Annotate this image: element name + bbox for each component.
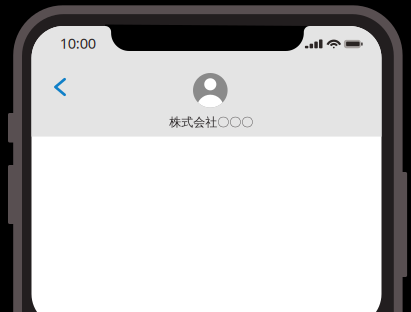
staticText: 10:00 — [60, 33, 96, 53]
button[interactable]: Back — [40, 65, 80, 109]
staticText: 株式会社〇〇〇 — [169, 115, 253, 129]
